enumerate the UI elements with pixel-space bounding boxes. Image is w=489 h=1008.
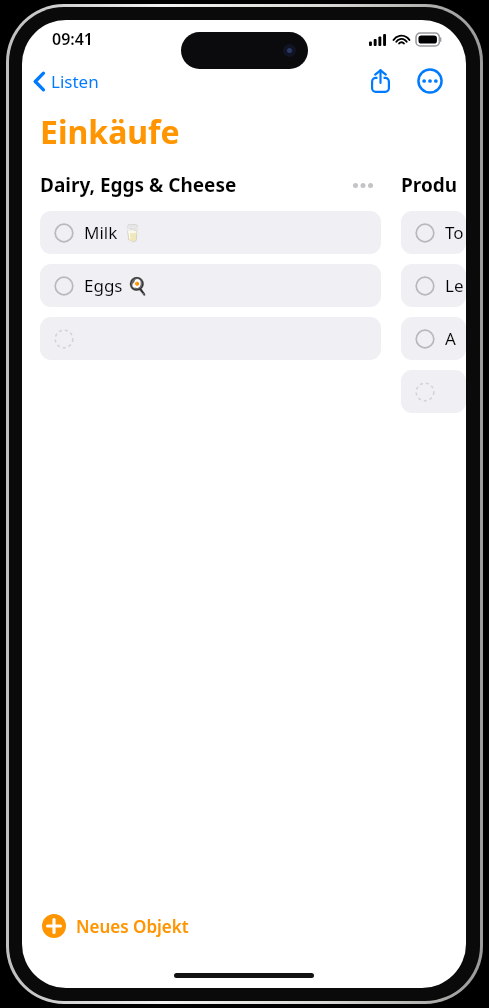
button[interactable]: Milk 🥛 [40, 211, 381, 254]
staticText: Listen [51, 70, 99, 93]
staticText: Produce [401, 172, 466, 198]
button[interactable]: Tomatoes 🍅 [401, 211, 466, 254]
staticText: Eggs 🍳 [84, 274, 149, 297]
staticText: Milk 🥛 [84, 221, 143, 244]
staticText: Tomatoes 🍅 [445, 221, 454, 244]
button[interactable]: Optionen [345, 177, 381, 194]
button[interactable]: Lettuce 🥬 [401, 264, 466, 307]
staticText: Apples 🍎 [445, 327, 454, 350]
staticText: Einkäufe [40, 110, 180, 154]
button[interactable]: Eggs 🍳 [40, 264, 381, 307]
staticText: 09:41 [52, 28, 94, 50]
button[interactable]: Apples 🍎 [401, 317, 466, 360]
button[interactable]: Listen [22, 66, 109, 97]
button[interactable] [401, 370, 466, 413]
staticText: Dairy, Eggs & Cheese [40, 172, 237, 198]
button[interactable]: Mehr [412, 63, 448, 99]
staticText: Lettuce 🥬 [445, 274, 454, 297]
button[interactable]: Teilen [363, 61, 398, 101]
staticText: Neues Objekt [76, 915, 189, 938]
button[interactable]: Neues Objekt [40, 910, 191, 942]
